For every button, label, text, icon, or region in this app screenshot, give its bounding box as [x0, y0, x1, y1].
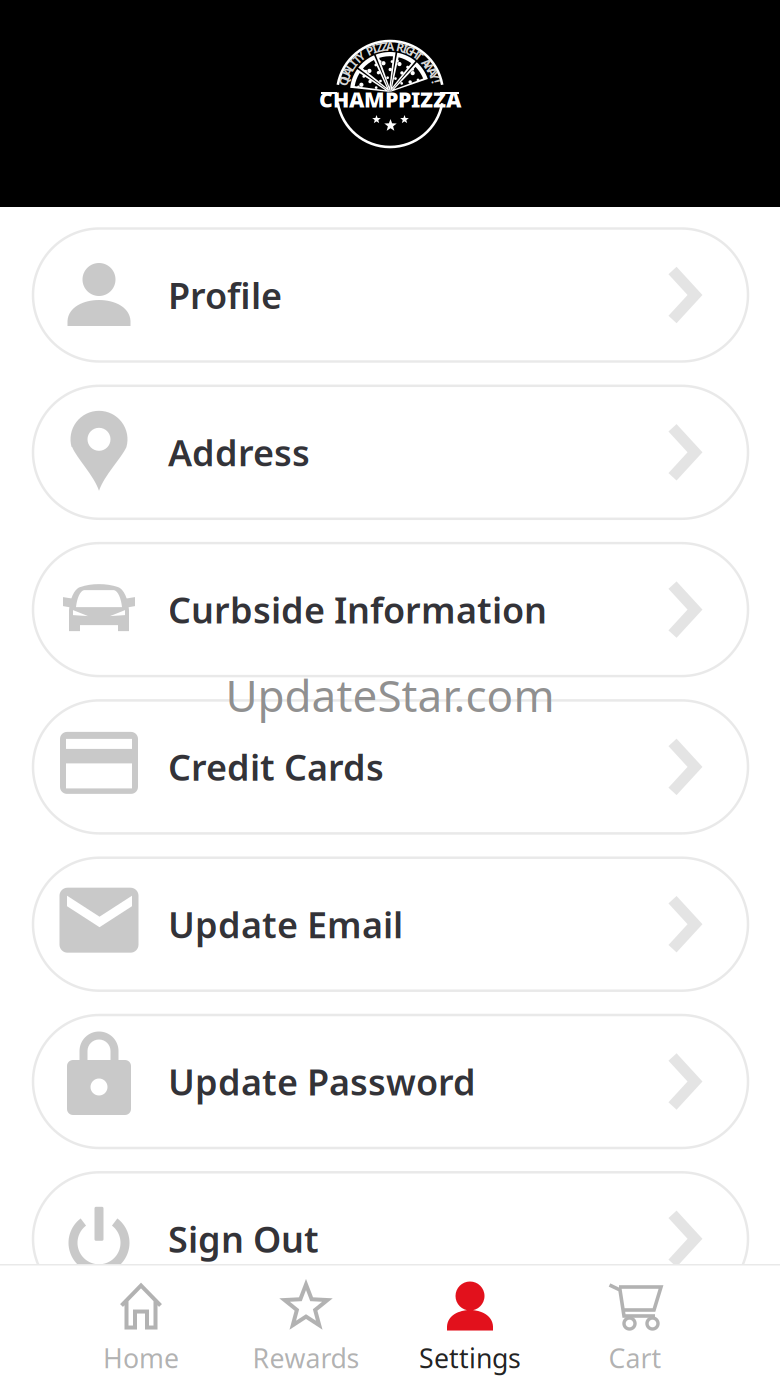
staticText: U [341, 68, 350, 84]
button[interactable]: Profile [33, 228, 748, 361]
staticText: Update Email [168, 900, 403, 948]
staticText: Credit Cards [168, 743, 384, 791]
staticText: H [410, 45, 419, 61]
staticText: Y [357, 48, 365, 64]
staticText: Cart [608, 1340, 661, 1376]
staticText: I [403, 40, 408, 56]
staticText: Profile [168, 271, 282, 319]
staticText: L [347, 59, 354, 75]
staticText: A [423, 55, 431, 71]
staticText: Home [103, 1340, 179, 1376]
staticText: Address [168, 428, 310, 476]
staticText: Settings [419, 1340, 521, 1376]
staticText: Curbside Information [168, 586, 547, 633]
staticText: T [415, 48, 422, 64]
button[interactable]: Update Password [33, 1015, 748, 1148]
staticText: Z [376, 39, 383, 55]
button[interactable]: Credit Cards [33, 700, 748, 833]
button[interactable]: Rewards [224, 1264, 388, 1387]
staticText: P [366, 42, 373, 58]
staticText: Sign Out [168, 1215, 319, 1263]
staticText: I [372, 40, 377, 56]
staticText: UpdateStar.com [225, 666, 554, 724]
staticText: A [386, 38, 394, 54]
staticText: A [428, 63, 436, 79]
staticText: I [351, 55, 356, 71]
staticText: R [396, 39, 404, 55]
staticText: Update Password [168, 1058, 476, 1105]
staticText [421, 51, 424, 67]
staticText: A [344, 63, 352, 79]
button[interactable]: Address [33, 386, 748, 519]
staticText: Q [339, 73, 348, 89]
button[interactable]: Cart [553, 1264, 717, 1387]
button[interactable]: Settings [388, 1264, 552, 1387]
staticText [364, 45, 367, 61]
staticText: CHAMPPIZZA [319, 85, 461, 113]
staticText: ! [435, 73, 438, 89]
staticText [394, 38, 397, 54]
staticText: Rewards [252, 1340, 359, 1376]
staticText: W [424, 59, 436, 75]
button[interactable]: Home [59, 1264, 223, 1387]
staticText: T [353, 51, 360, 67]
button[interactable]: Curbside Information [33, 543, 748, 676]
button[interactable]: Sign Out [33, 1172, 748, 1305]
button[interactable]: Update Email [33, 858, 748, 991]
staticText: Z [381, 38, 388, 54]
staticText: G [406, 42, 415, 58]
staticText: Y [431, 68, 439, 84]
